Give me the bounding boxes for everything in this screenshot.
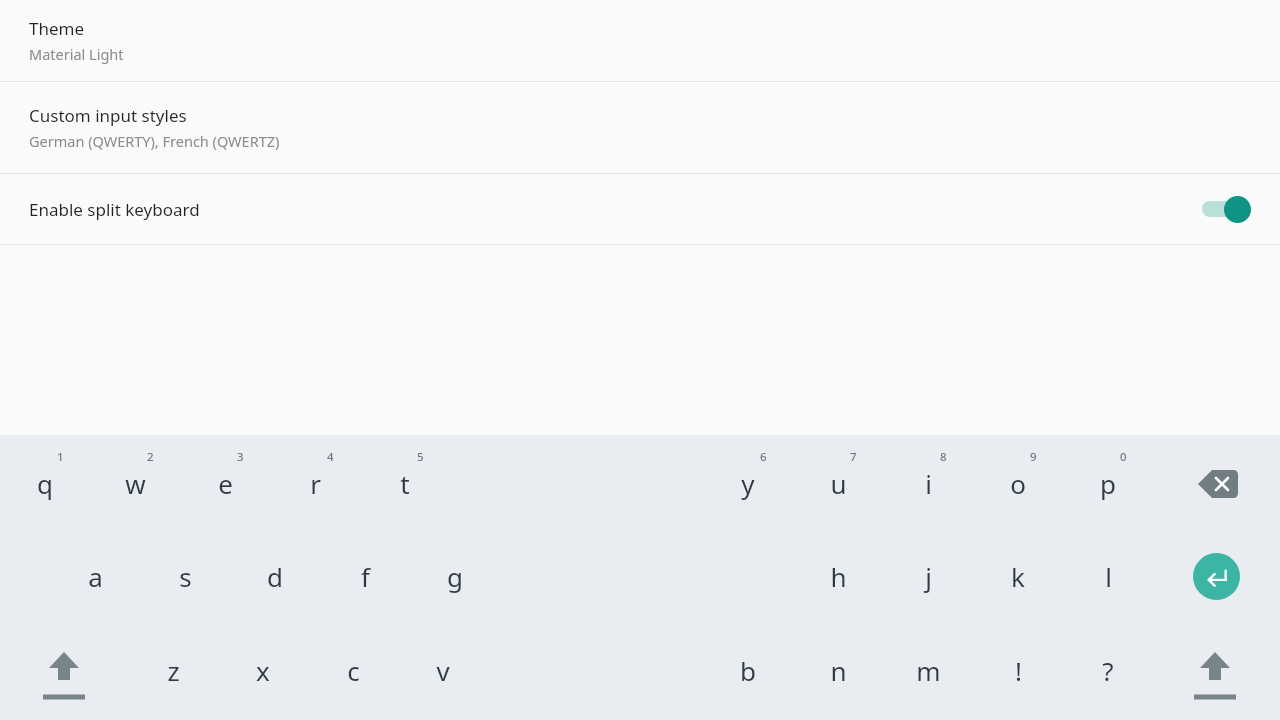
staticText: g: [447, 559, 463, 594]
staticText: e: [218, 466, 233, 501]
button[interactable]: Theme: [0, 0, 1280, 81]
button[interactable]: e: [195, 435, 255, 532]
staticText: s: [179, 559, 192, 594]
staticText: 0: [1120, 449, 1127, 465]
button[interactable]: i: [898, 435, 958, 532]
button[interactable]: g: [425, 532, 485, 620]
staticText: b: [740, 653, 756, 688]
button[interactable]: Enable split keyboard: [1200, 191, 1256, 227]
button[interactable]: !: [988, 620, 1048, 720]
staticText: x: [256, 653, 270, 688]
staticText: 7: [850, 449, 857, 465]
staticText: r: [310, 466, 321, 501]
staticText: i: [925, 466, 932, 501]
staticText: n: [830, 653, 847, 688]
button[interactable]: k: [988, 532, 1048, 620]
staticText: u: [830, 466, 847, 501]
staticText: Custom input styles: [29, 104, 187, 127]
staticText: v: [436, 653, 450, 688]
staticText: 4: [327, 449, 334, 465]
button[interactable]: m: [898, 620, 958, 720]
button[interactable]: Enter: [1176, 532, 1256, 620]
button[interactable]: h: [808, 532, 868, 620]
staticText: Enable split keyboard: [29, 198, 200, 221]
button[interactable]: Shift: [24, 620, 104, 720]
button[interactable]: Enable split keyboard: [0, 174, 1280, 244]
staticText: q: [37, 466, 53, 501]
button[interactable]: j: [898, 532, 958, 620]
staticText: !: [1015, 653, 1022, 688]
button[interactable]: p: [1078, 435, 1138, 532]
staticText: Theme: [29, 17, 85, 40]
staticText: k: [1011, 559, 1025, 594]
button[interactable]: Custom input styles: [0, 82, 1280, 173]
button[interactable]: o: [988, 435, 1048, 532]
button[interactable]: f: [335, 532, 395, 620]
staticText: p: [1100, 466, 1116, 501]
button[interactable]: t: [375, 435, 435, 532]
button[interactable]: x: [233, 620, 293, 720]
button[interactable]: ?: [1078, 620, 1138, 720]
button[interactable]: d: [245, 532, 305, 620]
staticText: a: [88, 559, 103, 594]
button[interactable]: Backspace: [1178, 435, 1258, 532]
staticText: 3: [237, 449, 244, 465]
button[interactable]: w: [105, 435, 165, 532]
staticText: German (QWERTY), French (QWERTZ): [29, 131, 280, 151]
button[interactable]: Shift: [1175, 620, 1255, 720]
button[interactable]: u: [808, 435, 868, 532]
button[interactable]: y: [718, 435, 778, 532]
staticText: z: [167, 653, 180, 688]
staticText: t: [400, 466, 410, 501]
staticText: h: [830, 559, 847, 594]
button[interactable]: q: [15, 435, 75, 532]
staticText: Material Light: [29, 44, 124, 64]
staticText: o: [1010, 466, 1026, 501]
button[interactable]: n: [808, 620, 868, 720]
staticText: 2: [147, 449, 154, 465]
staticText: m: [916, 653, 941, 688]
staticText: w: [125, 466, 146, 501]
button[interactable]: s: [155, 532, 215, 620]
button[interactable]: l: [1078, 532, 1138, 620]
staticText: 1: [57, 449, 64, 465]
staticText: 6: [760, 449, 767, 465]
button[interactable]: b: [718, 620, 778, 720]
staticText: l: [1105, 559, 1112, 594]
staticText: c: [347, 653, 360, 688]
button[interactable]: v: [413, 620, 473, 720]
staticText: ?: [1102, 653, 1114, 688]
staticText: y: [741, 466, 755, 501]
staticText: 8: [940, 449, 947, 465]
staticText: d: [267, 559, 283, 594]
staticText: f: [361, 559, 370, 594]
button[interactable]: c: [323, 620, 383, 720]
staticText: 5: [417, 449, 424, 465]
staticText: j: [925, 559, 932, 594]
button[interactable]: r: [285, 435, 345, 532]
button[interactable]: a: [65, 532, 125, 620]
button[interactable]: z: [143, 620, 203, 720]
staticText: 9: [1030, 449, 1037, 465]
